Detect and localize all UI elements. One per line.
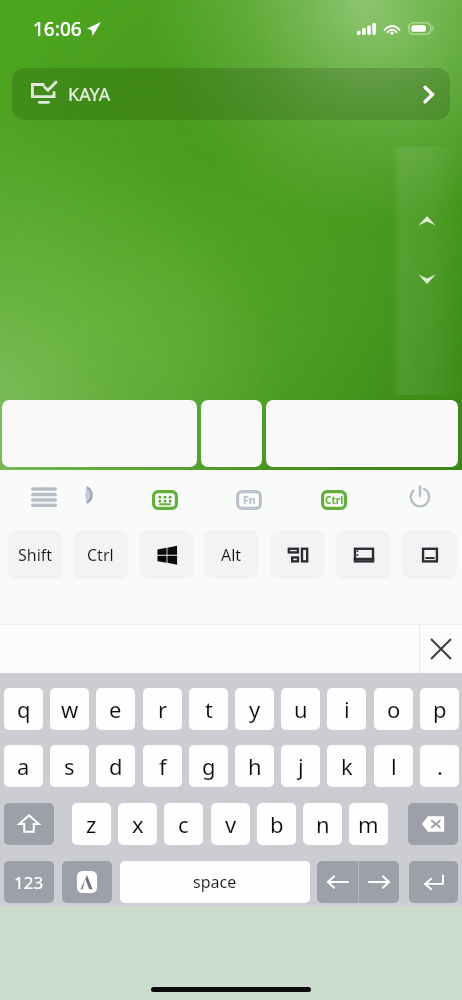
button[interactable]: return <box>409 861 458 903</box>
button[interactable]: Power <box>406 482 434 510</box>
staticText: g <box>202 751 216 781</box>
staticText: h <box>248 751 262 781</box>
staticText: Ctrl <box>87 544 114 566</box>
button[interactable]: Key 336 <box>336 530 391 579</box>
button[interactable]: l <box>374 745 413 787</box>
staticText: f <box>159 751 167 781</box>
staticText: Fn <box>243 493 256 507</box>
staticText: KAYA <box>68 82 111 107</box>
button[interactable]: r <box>143 688 182 730</box>
staticText: n <box>316 809 330 839</box>
button[interactable]: w <box>50 688 89 730</box>
button[interactable]: . <box>420 745 459 787</box>
button[interactable]: Right <box>358 861 399 903</box>
button[interactable] <box>2 400 197 467</box>
button[interactable]: Keyboard <box>152 490 178 510</box>
button[interactable]: x <box>118 803 157 845</box>
staticText: q <box>17 694 31 724</box>
button[interactable]: n <box>303 803 342 845</box>
button[interactable]: backspace <box>408 803 458 845</box>
staticText: m <box>358 809 379 839</box>
staticText: x <box>132 809 144 839</box>
button[interactable]: d <box>96 745 135 787</box>
button[interactable]: z <box>72 803 111 845</box>
button[interactable]: y <box>235 688 274 730</box>
button[interactable] <box>266 400 458 467</box>
staticText: i <box>344 694 350 724</box>
staticText: 16:06 <box>33 16 82 42</box>
button[interactable]: b <box>257 803 296 845</box>
button[interactable]: j <box>281 745 320 787</box>
other: Scroll down <box>418 274 436 285</box>
button[interactable]: Key 270 <box>270 530 325 579</box>
button[interactable]: Touchpad <box>85 486 95 504</box>
button[interactable]: i <box>327 688 366 730</box>
button[interactable]: Alt <box>204 530 259 579</box>
button[interactable] <box>201 400 262 467</box>
button[interactable]: Menu <box>24 478 64 514</box>
staticText: e <box>109 694 122 724</box>
staticText: b <box>270 809 284 839</box>
staticText: space <box>193 871 237 893</box>
button[interactable]: g <box>189 745 228 787</box>
staticText: a <box>17 751 30 781</box>
button[interactable]: h <box>235 745 274 787</box>
staticText: Ctrl <box>325 493 344 507</box>
staticText: . <box>437 751 443 781</box>
button[interactable]: p <box>420 688 459 730</box>
button[interactable]: shift <box>4 803 54 845</box>
staticText: 123 <box>14 871 44 894</box>
staticText: v <box>225 809 237 839</box>
button[interactable]: v <box>211 803 250 845</box>
button[interactable]: Key 139 <box>139 530 194 579</box>
button[interactable]: e <box>96 688 135 730</box>
staticText: p <box>433 694 447 724</box>
button[interactable]: a <box>4 745 43 787</box>
button[interactable]: Ctrl <box>321 490 347 510</box>
staticText: y <box>249 694 261 724</box>
staticText: r <box>158 694 168 724</box>
staticText: j <box>298 751 304 781</box>
staticText: c <box>178 809 189 839</box>
button[interactable]: Scroll up <box>393 147 462 395</box>
button[interactable]: Close <box>420 625 462 673</box>
staticText: t <box>205 694 213 724</box>
button[interactable]: KAYA <box>12 68 450 120</box>
button[interactable]: o <box>374 688 413 730</box>
staticText: d <box>109 751 123 781</box>
button[interactable]: m <box>349 803 388 845</box>
button[interactable]: u <box>281 688 320 730</box>
staticText: k <box>341 751 353 781</box>
staticText: z <box>86 809 97 839</box>
button[interactable]: f <box>143 745 182 787</box>
button[interactable]: Fn <box>236 490 262 510</box>
button[interactable]: space <box>120 861 310 903</box>
button[interactable]: Ctrl <box>73 530 128 579</box>
button[interactable]: s <box>50 745 89 787</box>
other: Scroll up <box>418 215 436 226</box>
button[interactable]: c <box>164 803 203 845</box>
button[interactable]: emoji <box>62 861 112 903</box>
staticText: u <box>294 694 308 724</box>
staticText: Shift <box>18 544 53 566</box>
button[interactable]: k <box>327 745 366 787</box>
button[interactable]: q <box>4 688 43 730</box>
staticText: s <box>64 751 75 781</box>
staticText: Alt <box>221 544 242 566</box>
button[interactable]: 123 <box>4 861 54 903</box>
button[interactable]: Left <box>317 861 358 903</box>
staticText: o <box>387 694 401 724</box>
staticText: l <box>391 751 397 781</box>
button[interactable]: Key 402 <box>402 530 457 579</box>
button[interactable]: t <box>189 688 228 730</box>
staticText: w <box>61 694 79 724</box>
button[interactable]: Shift <box>8 530 63 579</box>
